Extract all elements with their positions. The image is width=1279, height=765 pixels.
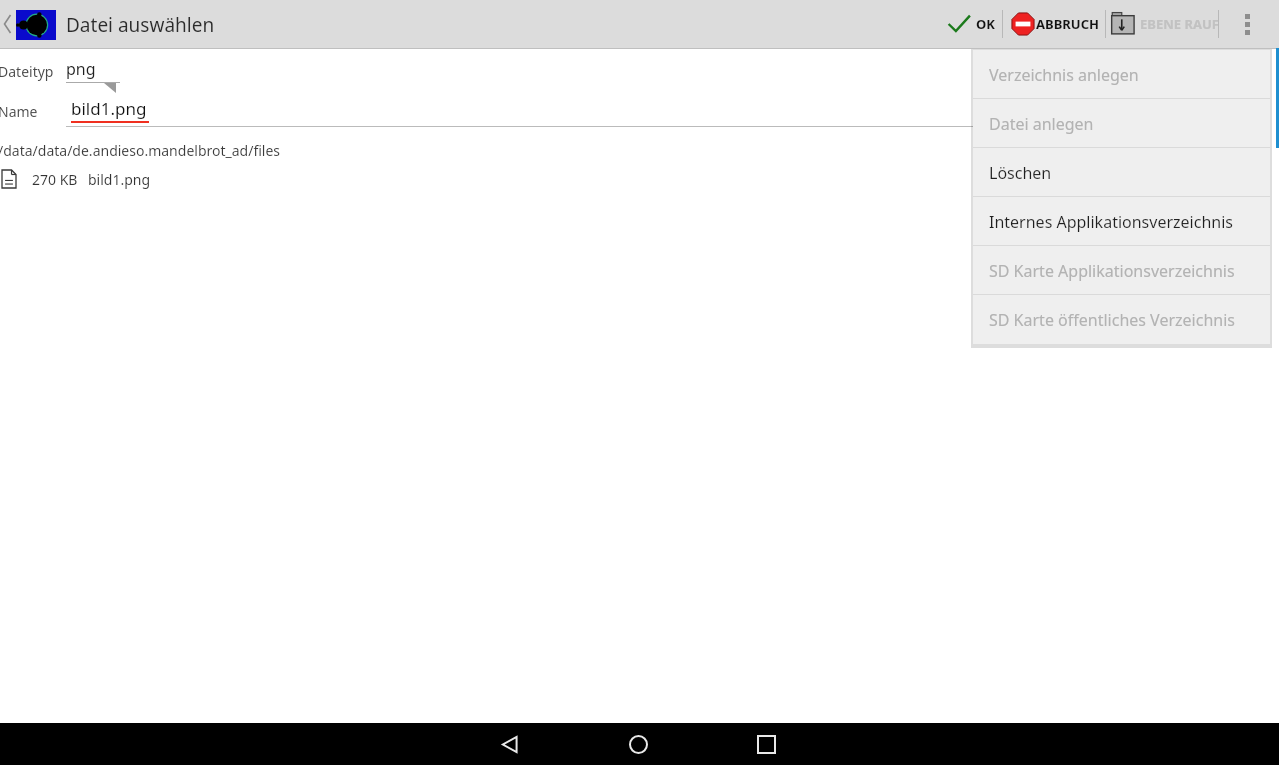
button[interactable]: ABBRUCH xyxy=(1010,4,1099,44)
button[interactable]: Startbildschirm xyxy=(598,723,678,765)
button[interactable]: App-Symbol xyxy=(16,10,56,40)
staticText: 270 KB xyxy=(32,170,78,189)
staticText: SD Karte Applikationsverzeichnis xyxy=(989,260,1235,282)
button[interactable]: Datei anlegen xyxy=(973,99,1270,148)
button[interactable]: SD Karte öffentliches Verzeichnis xyxy=(973,295,1270,344)
button[interactable]: png xyxy=(66,58,120,93)
button[interactable]: Löschen xyxy=(973,148,1270,197)
staticText: Löschen xyxy=(989,162,1052,184)
button[interactable]: SD Karte Applikationsverzeichnis xyxy=(973,246,1270,295)
staticText: Datei auswählen xyxy=(66,12,215,38)
staticText: bild1.png xyxy=(71,97,147,120)
staticText: Datei anlegen xyxy=(989,113,1094,135)
button[interactable]: OK xyxy=(940,4,1001,44)
staticText: /data/data/de.andieso.mandelbrot_ad/file… xyxy=(0,141,281,160)
staticText: SD Karte öffentliches Verzeichnis xyxy=(989,309,1235,331)
button[interactable]: Übersicht xyxy=(726,723,806,765)
staticText: EBENE RAUF xyxy=(1140,15,1219,33)
button[interactable]: EBENE RAUF xyxy=(1110,4,1219,44)
staticText: Dateityp xyxy=(0,62,54,81)
button[interactable]: bild1.png xyxy=(66,96,1270,128)
button[interactable]: Zurück xyxy=(470,723,550,765)
staticText: Name xyxy=(0,102,38,121)
button[interactable]: Internes Applikationsverzeichnis xyxy=(973,197,1270,246)
staticText: png xyxy=(66,58,96,80)
button[interactable]: Verzeichnis anlegen xyxy=(973,50,1270,99)
staticText: OK xyxy=(976,15,995,33)
staticText: Verzeichnis anlegen xyxy=(989,64,1139,86)
staticText: bild1.png xyxy=(88,170,151,189)
button[interactable]: Weitere Optionen xyxy=(1230,4,1264,44)
staticText: ABBRUCH xyxy=(1036,15,1099,33)
staticText: Internes Applikationsverzeichnis xyxy=(989,211,1233,233)
button[interactable]: 270 KB xyxy=(0,167,260,191)
button[interactable]: Zurück xyxy=(0,8,16,40)
